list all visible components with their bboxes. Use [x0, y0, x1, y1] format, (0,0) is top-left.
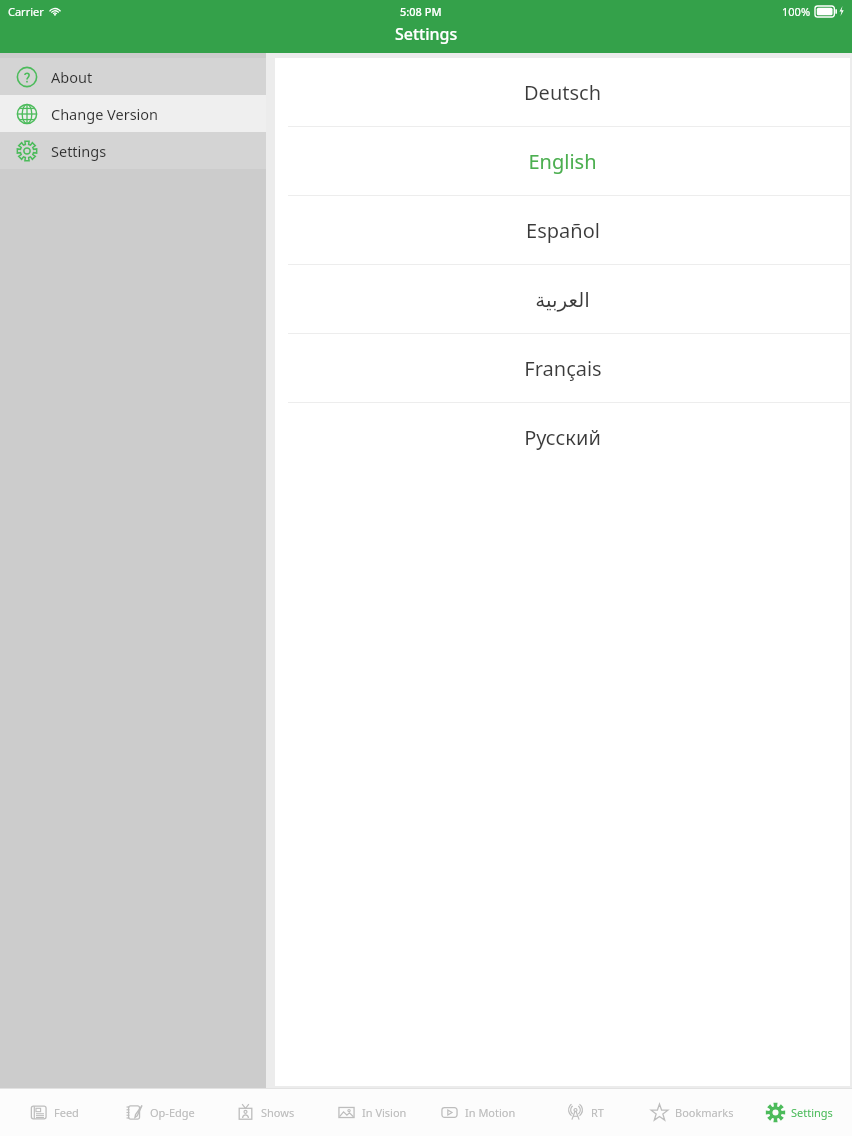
- staticText: In Motion: [465, 1105, 516, 1120]
- staticText: Русский: [524, 424, 601, 451]
- button[interactable]: Français: [275, 334, 850, 402]
- button[interactable]: Settings: [0, 132, 266, 169]
- button[interactable]: Feed: [0, 1088, 106, 1136]
- staticText: Change Version: [51, 104, 159, 124]
- staticText: Settings: [791, 1105, 833, 1120]
- button[interactable]: About: [0, 58, 266, 95]
- button[interactable]: RT: [531, 1088, 638, 1136]
- button[interactable]: Op-Edge: [106, 1088, 212, 1136]
- button[interactable]: English: [275, 127, 850, 195]
- staticText: Settings: [51, 141, 107, 161]
- staticText: Op-Edge: [150, 1105, 195, 1120]
- button[interactable]: Settings: [745, 1088, 852, 1136]
- button[interactable]: In Vision: [318, 1088, 424, 1136]
- staticText: Settings: [395, 23, 458, 45]
- staticText: Español: [526, 217, 600, 244]
- staticText: English: [528, 148, 597, 175]
- staticText: In Vision: [362, 1105, 407, 1120]
- staticText: Shows: [261, 1105, 295, 1120]
- staticText: Deutsch: [524, 79, 601, 106]
- button[interactable]: In Motion: [424, 1088, 531, 1136]
- staticText: Français: [524, 355, 602, 382]
- staticText: Feed: [54, 1105, 79, 1120]
- staticText: About: [51, 67, 93, 87]
- button[interactable]: Русский: [275, 403, 850, 471]
- staticText: العربية: [535, 288, 590, 311]
- staticText: RT: [591, 1105, 604, 1120]
- button[interactable]: Español: [275, 196, 850, 264]
- button[interactable]: Deutsch: [275, 58, 850, 126]
- staticText: Bookmarks: [675, 1105, 734, 1120]
- button[interactable]: Bookmarks: [638, 1088, 745, 1136]
- button[interactable]: Shows: [212, 1088, 318, 1136]
- staticText: 5:08 PM: [400, 4, 442, 19]
- button[interactable]: Change Version: [0, 95, 266, 132]
- button[interactable]: العربية: [275, 265, 850, 333]
- staticText: Carrier: [8, 4, 44, 19]
- staticText: 100%: [782, 4, 811, 19]
